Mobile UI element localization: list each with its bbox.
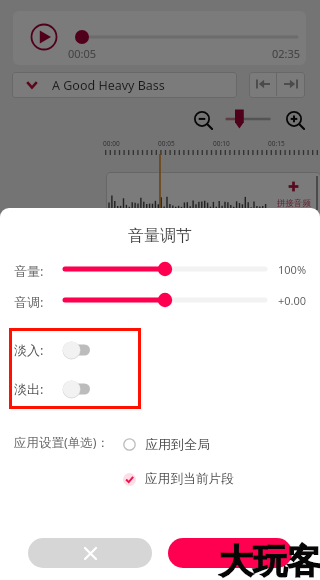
staticText: 音调: (14, 293, 44, 311)
staticText: A Good Heavy Bass (52, 77, 165, 94)
staticText: 大玩客 (219, 540, 320, 580)
button[interactable]: Zoom out (193, 110, 212, 129)
staticText: 00:05 (158, 139, 175, 148)
staticText: 00:15 (268, 139, 285, 148)
button[interactable]: Skip to end (277, 72, 304, 96)
button[interactable]: 淡出: (14, 379, 92, 399)
staticText: 音量: (14, 262, 44, 280)
staticText: 应用到当前片段 (145, 471, 234, 487)
button[interactable]: Cancel (28, 538, 152, 568)
staticText: 应用到全局 (145, 436, 210, 452)
staticText: 音量调节 (0, 226, 320, 246)
staticText: 00:10 (213, 139, 230, 148)
button[interactable]: Skip to start (249, 72, 276, 96)
staticText: 100% (278, 262, 307, 277)
staticText: 拼接音频 (277, 198, 311, 209)
button[interactable]: A Good Heavy Bass (12, 72, 237, 98)
button[interactable]: Confirm (168, 538, 292, 568)
button[interactable]: 淡入: (14, 340, 92, 360)
button[interactable]: 应用到当前片段 (123, 471, 234, 487)
button[interactable]: 应用到全局 (123, 436, 210, 452)
staticText: 淡出: (14, 380, 44, 398)
staticText: 淡入: (14, 341, 44, 359)
staticText: 00:05 (68, 46, 97, 61)
button[interactable]: Zoom in (285, 110, 304, 129)
staticText: 应用设置(单选)： (14, 434, 110, 451)
staticText: +0.00 (278, 293, 307, 308)
staticText: 00:00 (103, 139, 120, 148)
staticText: 02:35 (272, 46, 301, 61)
